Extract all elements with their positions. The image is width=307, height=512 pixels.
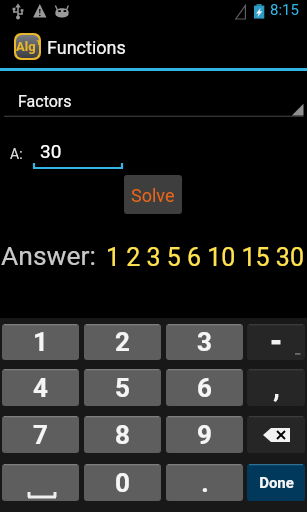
staticText: 1 2 3 5 6 10 15 30 bbox=[106, 243, 304, 272]
button[interactable]: 5 bbox=[84, 369, 161, 406]
staticText: 8:15 bbox=[270, 1, 299, 19]
button[interactable] bbox=[247, 324, 305, 360]
button[interactable]: , bbox=[247, 369, 305, 406]
other: Backspace bbox=[263, 428, 290, 442]
staticText: 4 bbox=[33, 373, 48, 403]
staticText: 9 bbox=[197, 420, 212, 450]
staticText: 3 bbox=[197, 327, 212, 357]
staticText: 8 bbox=[115, 420, 130, 450]
staticText: 30 bbox=[40, 140, 62, 162]
button[interactable]: Backspace bbox=[247, 416, 305, 453]
staticText: 7 bbox=[33, 420, 48, 450]
button[interactable]: 4 bbox=[2, 369, 79, 406]
staticText: Answer: bbox=[1, 240, 96, 271]
staticText: Done bbox=[259, 474, 294, 492]
staticText: Factors bbox=[18, 92, 72, 111]
button[interactable]: 2 bbox=[84, 324, 161, 360]
button[interactable]: 0 bbox=[84, 464, 161, 501]
staticText: 1 bbox=[36, 38, 39, 47]
staticText: A: bbox=[10, 146, 23, 162]
staticText: 5 bbox=[115, 373, 130, 403]
button[interactable]: . bbox=[166, 464, 243, 501]
staticText: 1 bbox=[33, 327, 48, 357]
button[interactable]: Alg bbox=[0, 0, 307, 68]
staticText: Solve bbox=[131, 185, 175, 206]
button[interactable]: Solve bbox=[124, 175, 182, 214]
staticText: 6 bbox=[197, 373, 212, 403]
button[interactable]: Factors bbox=[0, 71, 307, 117]
staticText: Alg bbox=[16, 39, 36, 54]
button[interactable]: 7 bbox=[2, 416, 79, 453]
button[interactable]: Space bbox=[2, 464, 79, 501]
button[interactable]: Done bbox=[247, 464, 305, 501]
button[interactable]: 9 bbox=[166, 416, 243, 453]
staticText: , bbox=[273, 373, 280, 403]
staticText: 2 bbox=[115, 327, 130, 357]
button[interactable]: 8 bbox=[84, 416, 161, 453]
button[interactable]: 3 bbox=[166, 324, 243, 360]
button[interactable]: 6 bbox=[166, 369, 243, 406]
button[interactable]: 1 bbox=[2, 324, 79, 360]
staticText: Functions bbox=[47, 37, 126, 58]
staticText: 0 bbox=[115, 468, 130, 498]
other: Space bbox=[2, 464, 79, 501]
staticText: . bbox=[201, 468, 209, 498]
